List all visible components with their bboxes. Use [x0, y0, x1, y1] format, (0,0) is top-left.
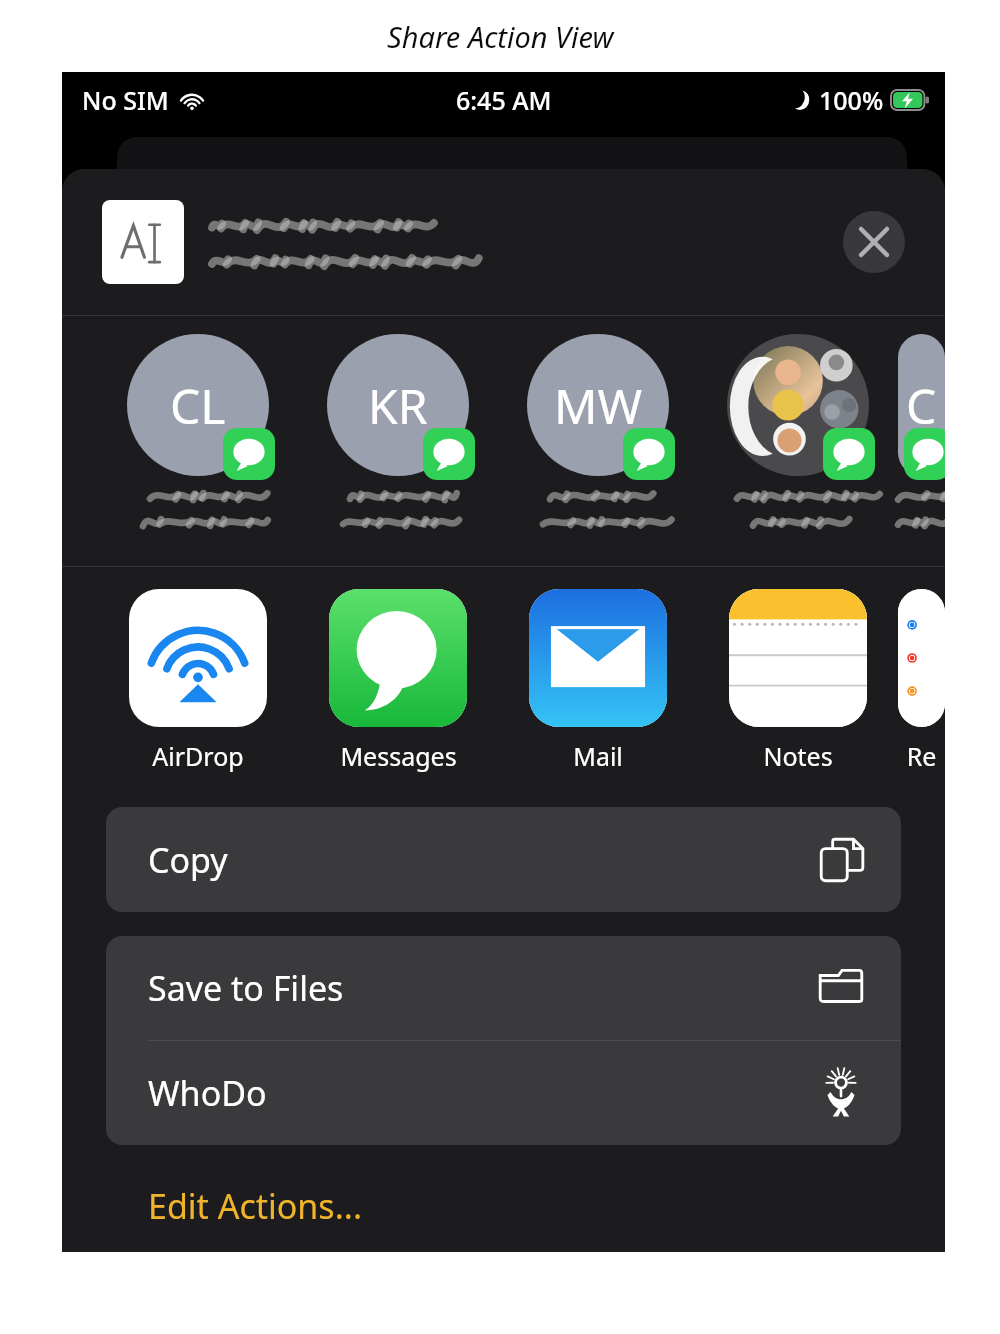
staticText: CL [170, 373, 226, 438]
button[interactable]: KR [298, 334, 498, 532]
button[interactable]: Messages [298, 589, 498, 773]
button[interactable]: Notes [698, 589, 898, 773]
button[interactable]: MW [498, 334, 698, 532]
button[interactable]: CL [98, 334, 298, 532]
button[interactable]: AirDrop [98, 589, 298, 773]
button[interactable]: Close [843, 211, 905, 273]
button[interactable]: Edit Actions... [106, 1175, 901, 1237]
button[interactable]: C [898, 334, 945, 532]
staticText: Messages [340, 739, 457, 773]
staticText: MW [554, 373, 643, 438]
staticText: Edit Actions... [148, 1183, 362, 1229]
staticText: No SIM [82, 83, 169, 117]
staticText: Mail [573, 739, 623, 773]
staticText: Notes [763, 739, 833, 773]
button[interactable]: Save to Files [106, 936, 901, 1040]
button[interactable]: Mail [498, 589, 698, 773]
staticText: C [906, 373, 937, 438]
staticText: 6:45 AM [456, 83, 552, 117]
staticText: KR [368, 373, 428, 438]
button[interactable] [698, 334, 898, 532]
staticText: WhoDo [148, 1070, 267, 1116]
staticText: Copy [148, 837, 228, 883]
staticText: Reminders [898, 739, 945, 777]
button[interactable]: WhoDo [106, 1041, 901, 1145]
staticText: Share Action View [387, 17, 614, 56]
button[interactable]: Reminders [898, 589, 945, 777]
staticText: Save to Files [148, 965, 344, 1011]
staticText: AirDrop [152, 739, 244, 773]
button[interactable]: Copy [106, 807, 901, 912]
staticText: 100% [819, 83, 884, 117]
